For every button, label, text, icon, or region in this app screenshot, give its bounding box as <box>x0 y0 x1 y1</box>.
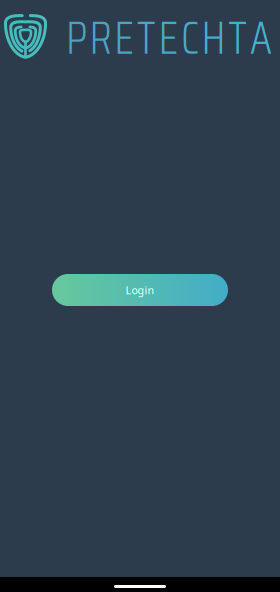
staticText: A <box>250 2 272 74</box>
staticText: P <box>66 2 87 74</box>
button[interactable]: Login <box>52 274 228 306</box>
staticText: C <box>181 2 199 74</box>
staticText: Login <box>125 283 154 297</box>
staticText: E <box>114 2 134 74</box>
staticText: T <box>228 2 247 74</box>
staticText: T <box>137 2 156 74</box>
staticText: R <box>90 2 112 74</box>
staticText: H <box>202 2 226 74</box>
staticText: E <box>158 2 178 74</box>
